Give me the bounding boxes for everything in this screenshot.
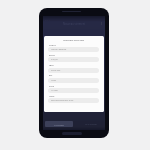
staticText: Virement ponctuel — [63, 38, 85, 41]
button[interactable]: Marie Lefebvre — [48, 47, 99, 52]
staticText: NOTE — [49, 95, 55, 98]
staticText: VALIDER — [54, 123, 64, 126]
staticText: 12 juin — [51, 89, 58, 92]
staticText: IBAN — [49, 64, 54, 67]
staticText: 9:41 — [45, 18, 50, 21]
button[interactable]: Nouveau virement — [43, 21, 105, 26]
staticText: ANNULER — [85, 122, 97, 125]
staticText: FR76 300 — [51, 69, 61, 72]
button[interactable]: More options — [99, 21, 104, 26]
staticText: Marie Lefebvre — [51, 48, 67, 51]
staticText: BIC — [49, 74, 53, 77]
staticText: 240,00 — [51, 58, 58, 61]
staticText: CLIENT — [49, 44, 56, 47]
staticText: Nouveau virement — [63, 22, 86, 25]
button[interactable]: 240,00 — [48, 57, 99, 62]
button[interactable]: FR76 300 — [48, 68, 99, 73]
button[interactable]: AGRI — [48, 78, 99, 83]
staticText: EMAIL — [49, 54, 56, 57]
button[interactable]: Remboursement frais — [48, 98, 99, 103]
button[interactable]: VALIDER — [45, 121, 73, 127]
button[interactable]: 12 juin — [48, 88, 99, 93]
staticText: Remboursement frais — [51, 99, 74, 102]
button[interactable]: ANNULER — [81, 121, 100, 126]
staticText: AGRI — [51, 79, 57, 82]
staticText: DATE — [49, 85, 54, 88]
